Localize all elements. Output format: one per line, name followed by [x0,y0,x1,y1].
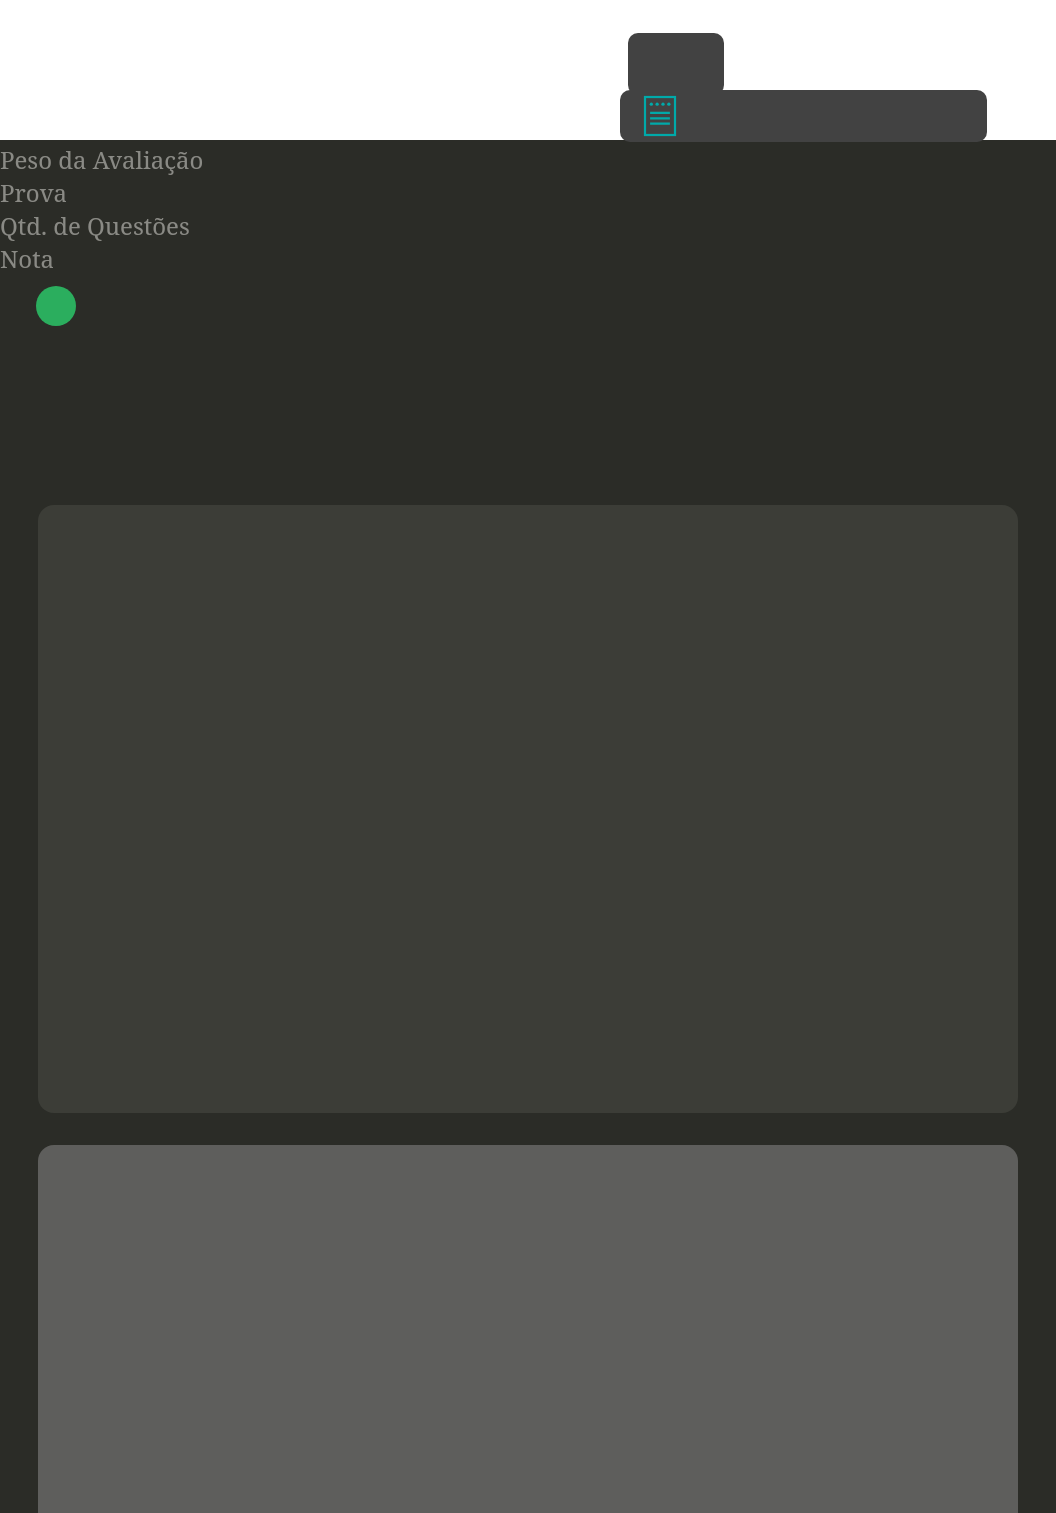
button[interactable]: Menu panel [628,33,724,95]
staticText: Qtd. de Questões [0,209,190,242]
staticText: Peso da Avaliação [0,143,204,176]
staticText: Nota [0,242,55,275]
button[interactable]: Notes [620,90,987,142]
button[interactable]: Status indicator [36,286,76,326]
staticText: Prova [0,176,68,209]
